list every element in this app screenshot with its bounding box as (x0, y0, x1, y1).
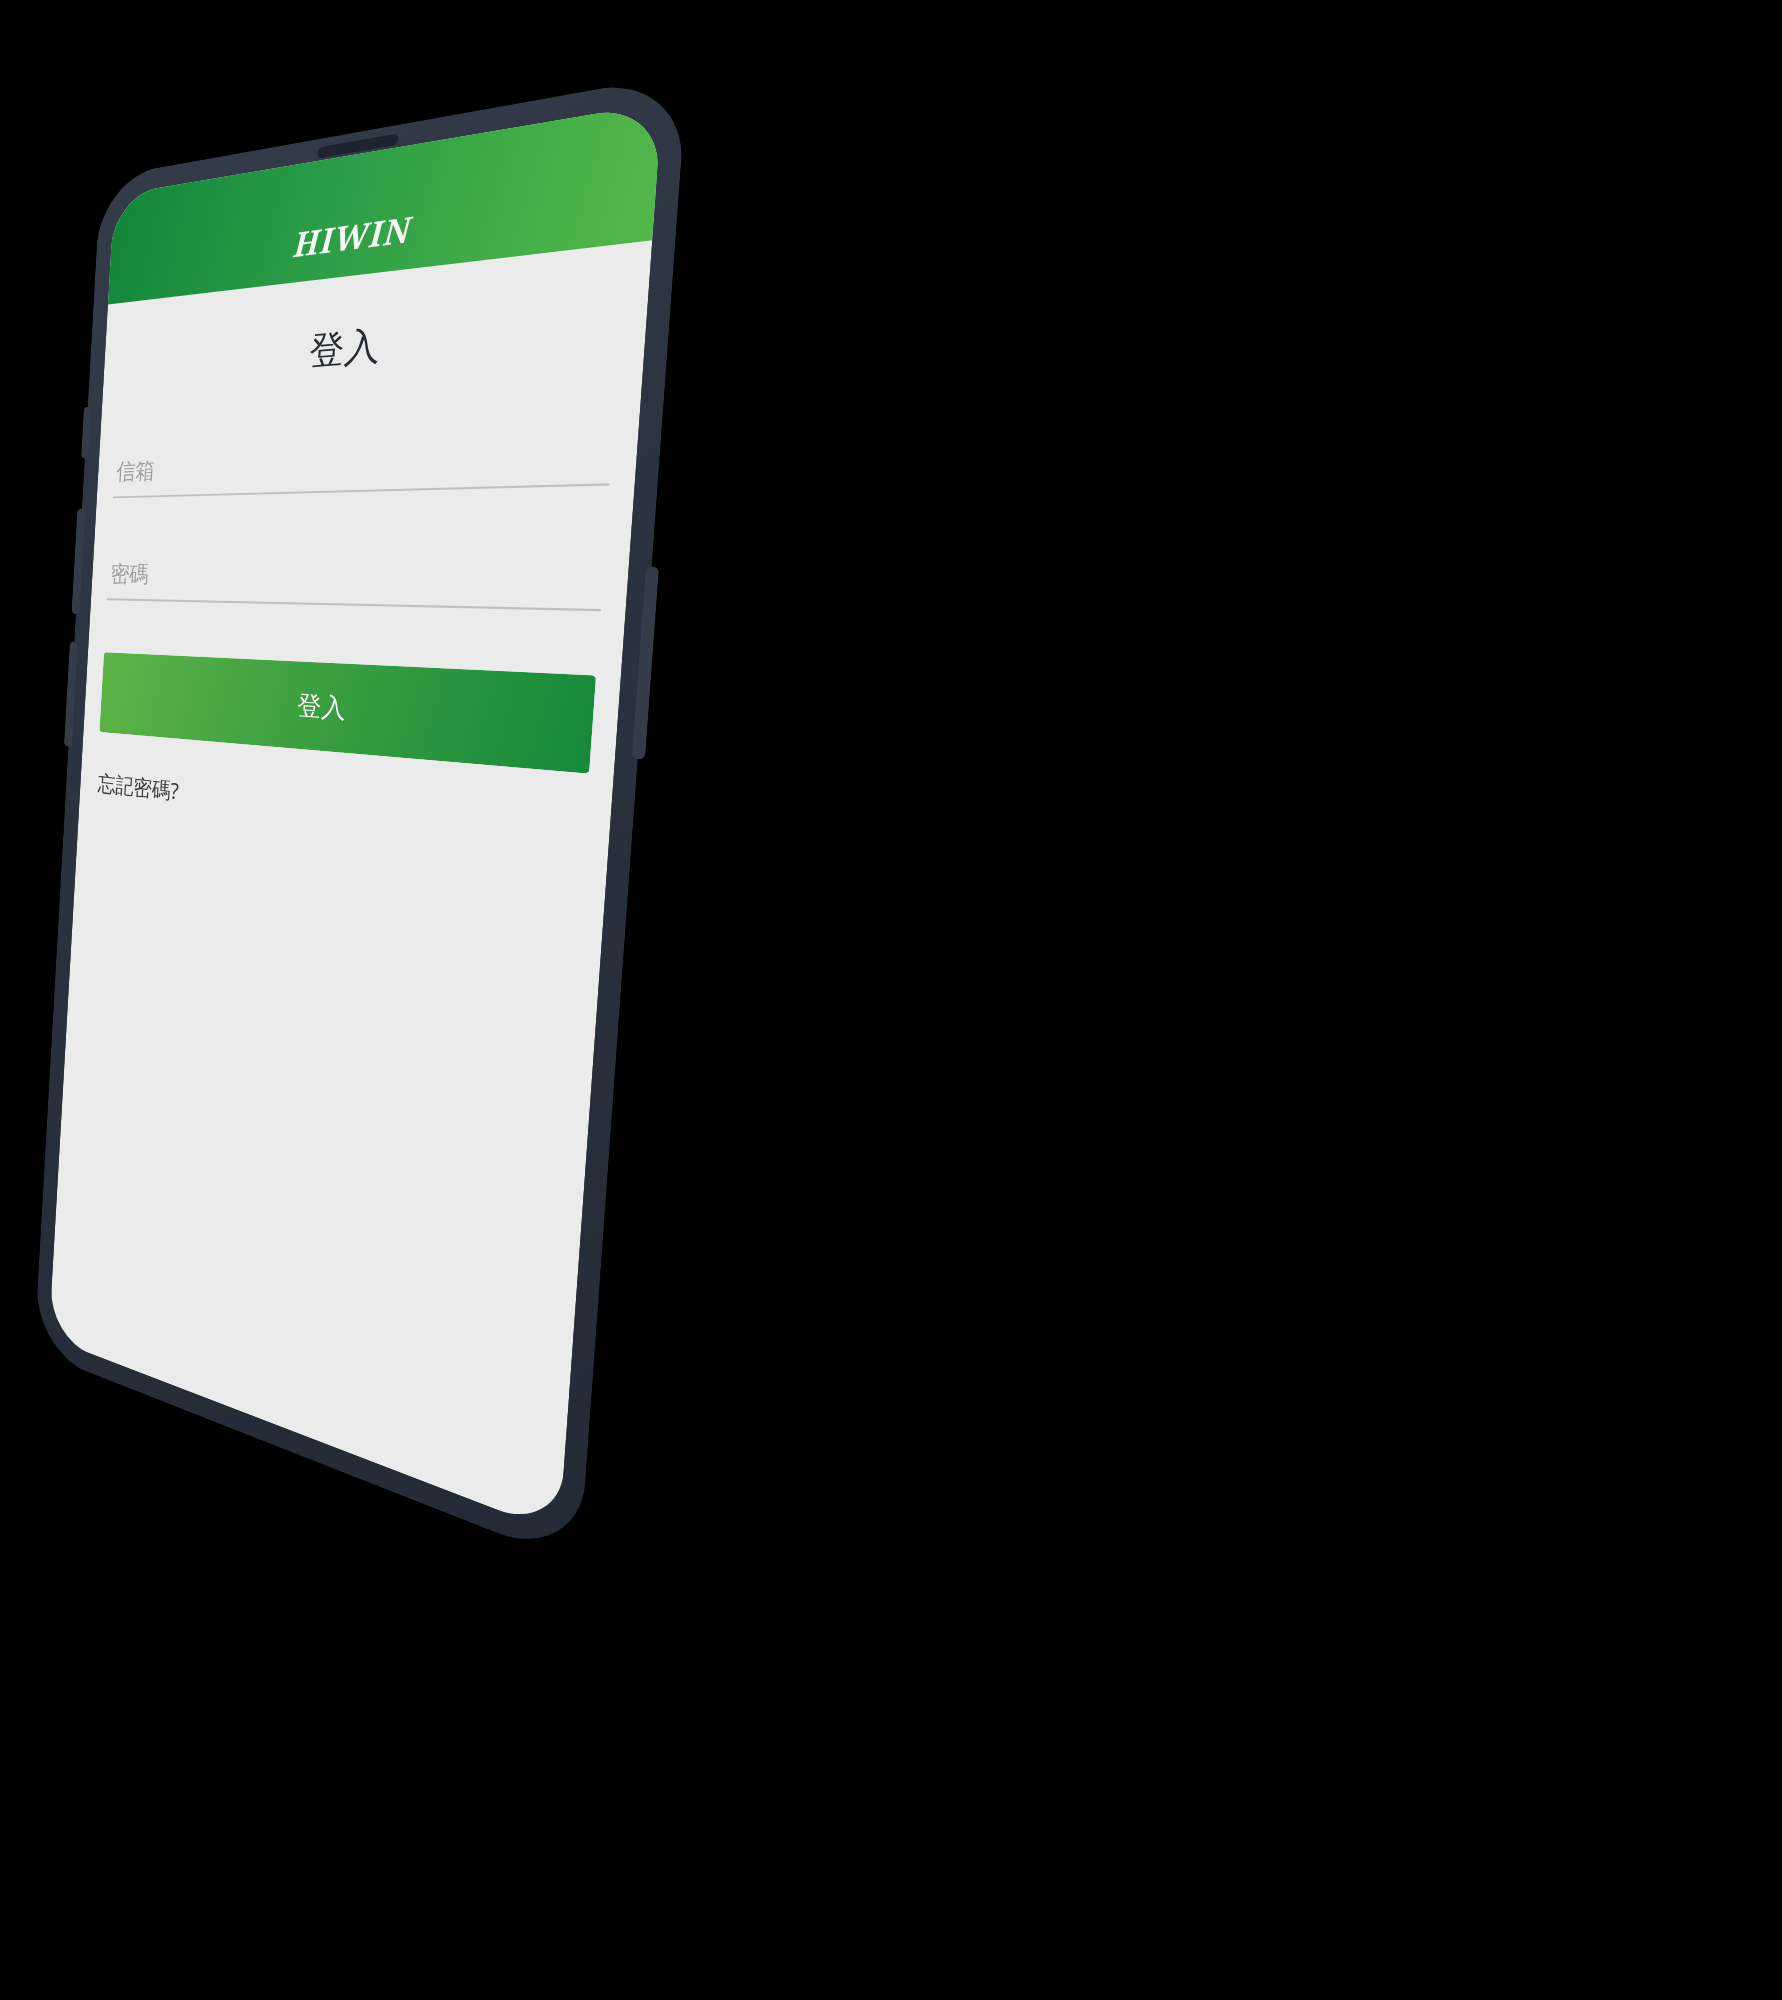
other: Mute switch (81, 406, 91, 459)
other: Volume down (64, 641, 78, 747)
staticText: 密碼 (110, 560, 149, 589)
other: Volume up (71, 508, 86, 614)
staticText: 忘記密碼? (97, 767, 180, 805)
button[interactable]: 登入 (99, 652, 596, 774)
button[interactable]: 忘記密碼? (97, 763, 180, 809)
button[interactable]: 密碼 (107, 560, 604, 611)
staticText: HIWIN (293, 204, 414, 267)
staticText: 登入 (296, 689, 347, 726)
other: Power (632, 566, 659, 760)
button[interactable]: 信箱 (113, 436, 613, 498)
staticText: 信箱 (116, 456, 155, 486)
staticText: 登入 (103, 294, 648, 392)
